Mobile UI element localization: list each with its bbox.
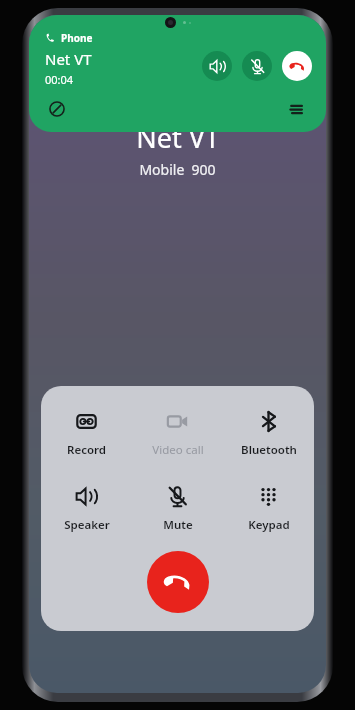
button[interactable]: Speaker: [41, 483, 132, 535]
button[interactable]: End call: [282, 51, 312, 81]
button[interactable]: Expand: [286, 99, 306, 119]
button[interactable]: Speaker: [202, 51, 232, 81]
button[interactable]: Mute: [132, 483, 223, 535]
button[interactable]: Video call: [132, 408, 223, 460]
staticText: Phone: [61, 31, 93, 45]
staticText: Keypad: [248, 517, 290, 533]
staticText: 00:04: [45, 72, 74, 87]
button[interactable]: Keypad: [223, 483, 314, 535]
button[interactable]: End call: [147, 551, 209, 613]
staticText: Speaker: [64, 517, 110, 533]
button[interactable]: Mute microphone: [242, 51, 272, 81]
staticText: Video call: [152, 442, 204, 458]
button[interactable]: Record: [41, 408, 132, 460]
staticText: Bluetooth: [241, 442, 297, 458]
staticText: Mobile 900: [139, 160, 216, 179]
button[interactable]: Bluetooth: [223, 408, 314, 460]
staticText: Mute: [163, 517, 193, 533]
staticText: Net VT: [136, 119, 220, 156]
button[interactable]: Block: [47, 99, 67, 119]
staticText: Record: [67, 442, 106, 458]
staticText: Net VT: [45, 49, 92, 69]
